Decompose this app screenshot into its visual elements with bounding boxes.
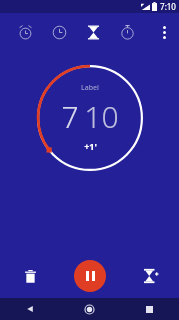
button[interactable]: Label	[61, 83, 119, 153]
button[interactable]: Add timer	[137, 262, 165, 290]
staticText: Label	[81, 83, 99, 93]
staticText: 7:10	[160, 1, 176, 12]
staticText: +1'	[84, 140, 97, 152]
staticText: 10	[84, 96, 119, 137]
button[interactable]: Recents	[119, 298, 179, 320]
button[interactable]: Home	[59, 298, 119, 320]
button[interactable]: Clock	[42, 15, 76, 49]
button[interactable]: More options	[149, 17, 179, 47]
button[interactable]: Pause	[74, 260, 106, 292]
button[interactable]: Back	[0, 298, 59, 320]
button[interactable]: +1'	[80, 139, 101, 153]
button[interactable]: Alarm	[8, 15, 42, 49]
button[interactable]: Stopwatch	[110, 15, 144, 49]
button[interactable]: Delete timer	[16, 262, 44, 290]
button[interactable]: Timer	[76, 15, 110, 49]
staticText: 7	[61, 96, 79, 137]
